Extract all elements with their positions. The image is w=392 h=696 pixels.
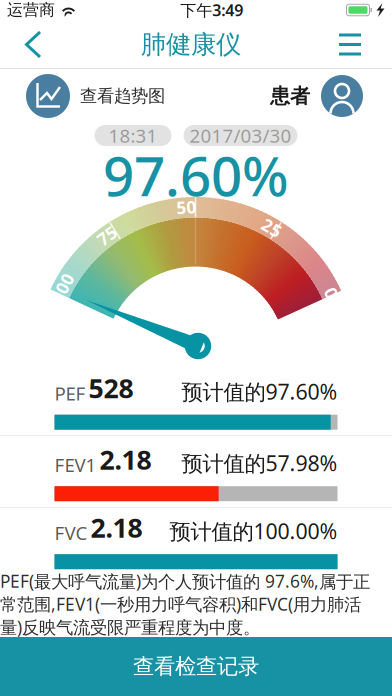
staticText: 预计值的97.60% [181, 377, 337, 406]
staticText: 2.18 [90, 510, 142, 545]
staticText: 肺健康仪 [141, 29, 241, 60]
staticText: 下午3:49 [180, 0, 243, 21]
staticText: 50 [176, 195, 196, 218]
staticText: 患者 [270, 84, 310, 108]
button[interactable]: 返回 [0, 20, 57, 69]
staticText: 528 [88, 370, 133, 406]
staticText: 25 [262, 216, 282, 239]
staticText: 97.60% [103, 139, 289, 211]
staticText: 查看趋势图 [80, 85, 165, 107]
staticText: 2017/03/30 [189, 123, 291, 148]
staticText: 0 [326, 281, 336, 304]
staticText: PEF(最大呼气流量)为个人预计值的 97.6%,属于正常范围,FEV1(一秒用… [0, 569, 370, 638]
staticText: PEF [54, 381, 85, 406]
staticText: 运营商 [7, 0, 55, 20]
staticText: 查看检查记录 [133, 653, 259, 680]
staticText: 预计值的100.00% [169, 517, 337, 545]
staticText: 100 [47, 276, 77, 299]
button[interactable]: 查看趋势图 [26, 74, 165, 118]
button[interactable]: 患者 [270, 75, 363, 117]
staticText: 18:31 [108, 123, 157, 148]
button[interactable]: 查看检查记录 [0, 637, 392, 696]
staticText: FEV1 [54, 452, 96, 477]
staticText: FVC [54, 520, 87, 545]
staticText: 75 [97, 224, 117, 247]
button[interactable]: 菜单 [325, 20, 392, 69]
staticText: 2.18 [99, 442, 151, 477]
staticText: 预计值的57.98% [181, 449, 337, 477]
